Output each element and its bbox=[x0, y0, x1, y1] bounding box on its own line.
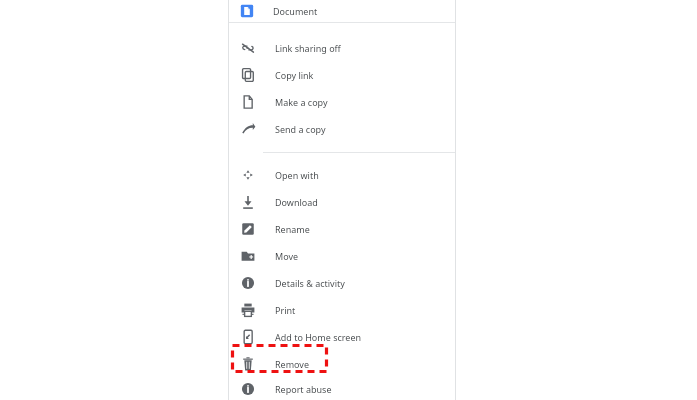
staticText: Move bbox=[275, 250, 299, 262]
staticText: Make a copy bbox=[275, 96, 328, 108]
button[interactable]: Open with bbox=[228, 161, 456, 188]
staticText: Send a copy bbox=[275, 123, 326, 135]
staticText: Copy link bbox=[275, 69, 314, 81]
staticText: Open with bbox=[275, 169, 319, 181]
button[interactable]: Rename bbox=[228, 215, 456, 242]
staticText: Report abuse bbox=[275, 383, 332, 395]
button[interactable]: Report abuse bbox=[228, 377, 456, 400]
staticText: Remove bbox=[275, 358, 310, 370]
button[interactable]: Send a copy bbox=[228, 115, 456, 142]
button[interactable]: Link sharing off bbox=[228, 34, 456, 61]
staticText: Download bbox=[275, 196, 318, 208]
button[interactable]: Copy link bbox=[228, 61, 456, 88]
button[interactable]: Document bbox=[228, 0, 456, 22]
staticText: Document bbox=[273, 5, 318, 17]
button[interactable]: Remove bbox=[228, 350, 456, 377]
button[interactable]: Print bbox=[228, 296, 456, 323]
staticText: Add to Home screen bbox=[275, 331, 362, 343]
button[interactable]: Move bbox=[228, 242, 456, 269]
button[interactable]: Add to Home screen bbox=[228, 323, 456, 350]
button[interactable]: Download bbox=[228, 188, 456, 215]
staticText: Link sharing off bbox=[275, 42, 341, 54]
other: Remove highlighted bbox=[230, 343, 329, 374]
staticText: Print bbox=[275, 304, 296, 316]
staticText: Details & activity bbox=[275, 277, 345, 289]
button[interactable]: Make a copy bbox=[228, 88, 456, 115]
staticText: Rename bbox=[275, 223, 310, 235]
button[interactable]: Details & activity bbox=[228, 269, 456, 296]
